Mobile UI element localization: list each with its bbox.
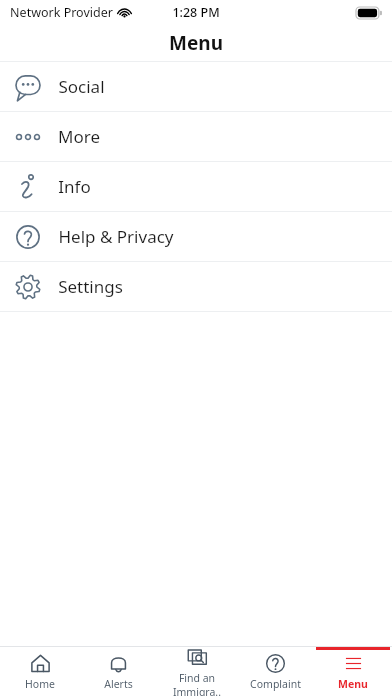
staticText: Complaint: [250, 677, 301, 691]
staticText: 1:28 PM: [172, 4, 220, 21]
button[interactable]: Find an Immigra..: [158, 647, 236, 696]
staticText: Home: [25, 677, 55, 691]
staticText: Settings: [58, 275, 123, 298]
button[interactable]: More: [0, 112, 392, 161]
button[interactable]: Social: [0, 62, 392, 111]
staticText: Network Provider: [10, 4, 113, 21]
button[interactable]: Alerts: [79, 647, 158, 696]
staticText: Menu: [338, 677, 368, 691]
button[interactable]: Menu: [314, 647, 392, 696]
button[interactable]: Info: [0, 162, 392, 211]
staticText: Menu: [169, 30, 223, 56]
staticText: Social: [58, 75, 105, 98]
button[interactable]: Complaint: [236, 647, 314, 696]
staticText: Info: [58, 175, 91, 198]
button[interactable]: Settings: [0, 262, 392, 311]
staticText: More: [58, 125, 100, 148]
staticText: Help & Privacy: [58, 225, 174, 248]
button[interactable]: Home: [0, 647, 79, 696]
staticText: Alerts: [104, 677, 133, 691]
button[interactable]: Help & Privacy: [0, 212, 392, 261]
staticText: Find an Immigra..: [158, 671, 236, 696]
